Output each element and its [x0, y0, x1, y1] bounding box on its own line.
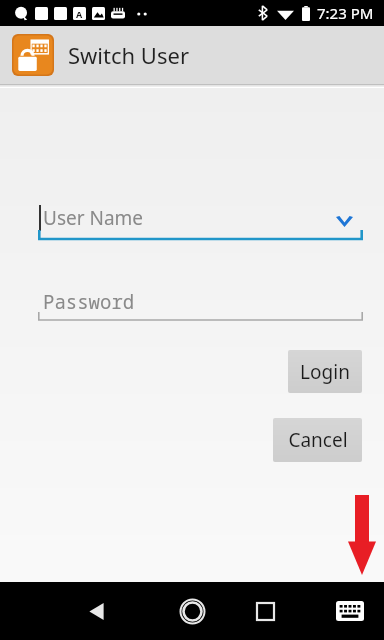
button[interactable]: Home — [168, 587, 216, 635]
button[interactable]: User Name — [38, 205, 363, 241]
staticText: 7:23 PM — [317, 3, 374, 23]
button[interactable]: Change keyboard — [328, 589, 372, 633]
button[interactable]: Cancel — [273, 418, 362, 462]
staticText: Login — [300, 359, 350, 385]
button[interactable]: Password — [38, 289, 363, 322]
button[interactable]: Login — [288, 350, 362, 393]
staticText: Switch User — [68, 40, 189, 70]
staticText: Cancel — [288, 427, 348, 453]
button[interactable]: Back — [72, 587, 120, 635]
staticText: A — [76, 8, 83, 20]
staticText: User Name — [43, 205, 144, 231]
staticText: Password — [43, 289, 135, 315]
button[interactable]: Recent apps — [241, 587, 289, 635]
button[interactable]: Show user list — [333, 210, 355, 232]
